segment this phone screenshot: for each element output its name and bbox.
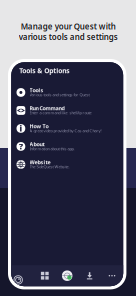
staticText: Information about this app. [29,146,74,151]
button[interactable]: Profile [56,265,78,286]
staticText: <> [17,106,25,115]
button[interactable]: Tools [11,83,123,101]
button[interactable]: Devices [11,265,34,286]
button[interactable]: i [11,119,123,137]
staticText: Enter a command like shell/ip route [29,110,91,115]
staticText: The SideQuest Website. [29,164,69,169]
staticText: A great video provided by Cas and Chary! [29,128,101,133]
staticText: Run Command [29,105,64,112]
staticText: Tools [29,87,43,94]
staticText: Website [29,159,50,166]
button[interactable]: More [101,265,123,286]
staticText: About [29,141,44,148]
staticText: Tools & Options [19,66,69,75]
button[interactable]: Website [11,155,123,173]
button[interactable]: ? [11,137,123,155]
staticText: i [19,123,22,134]
button[interactable]: Apps [34,265,56,286]
staticText: ? [19,141,23,152]
button[interactable]: <> [11,101,123,119]
button[interactable]: Downloads [78,265,101,286]
staticText: How To [29,123,48,130]
staticText: Manage your Quest with various tools and… [18,21,117,42]
staticText: Various tools and settings for Quest [29,92,89,97]
